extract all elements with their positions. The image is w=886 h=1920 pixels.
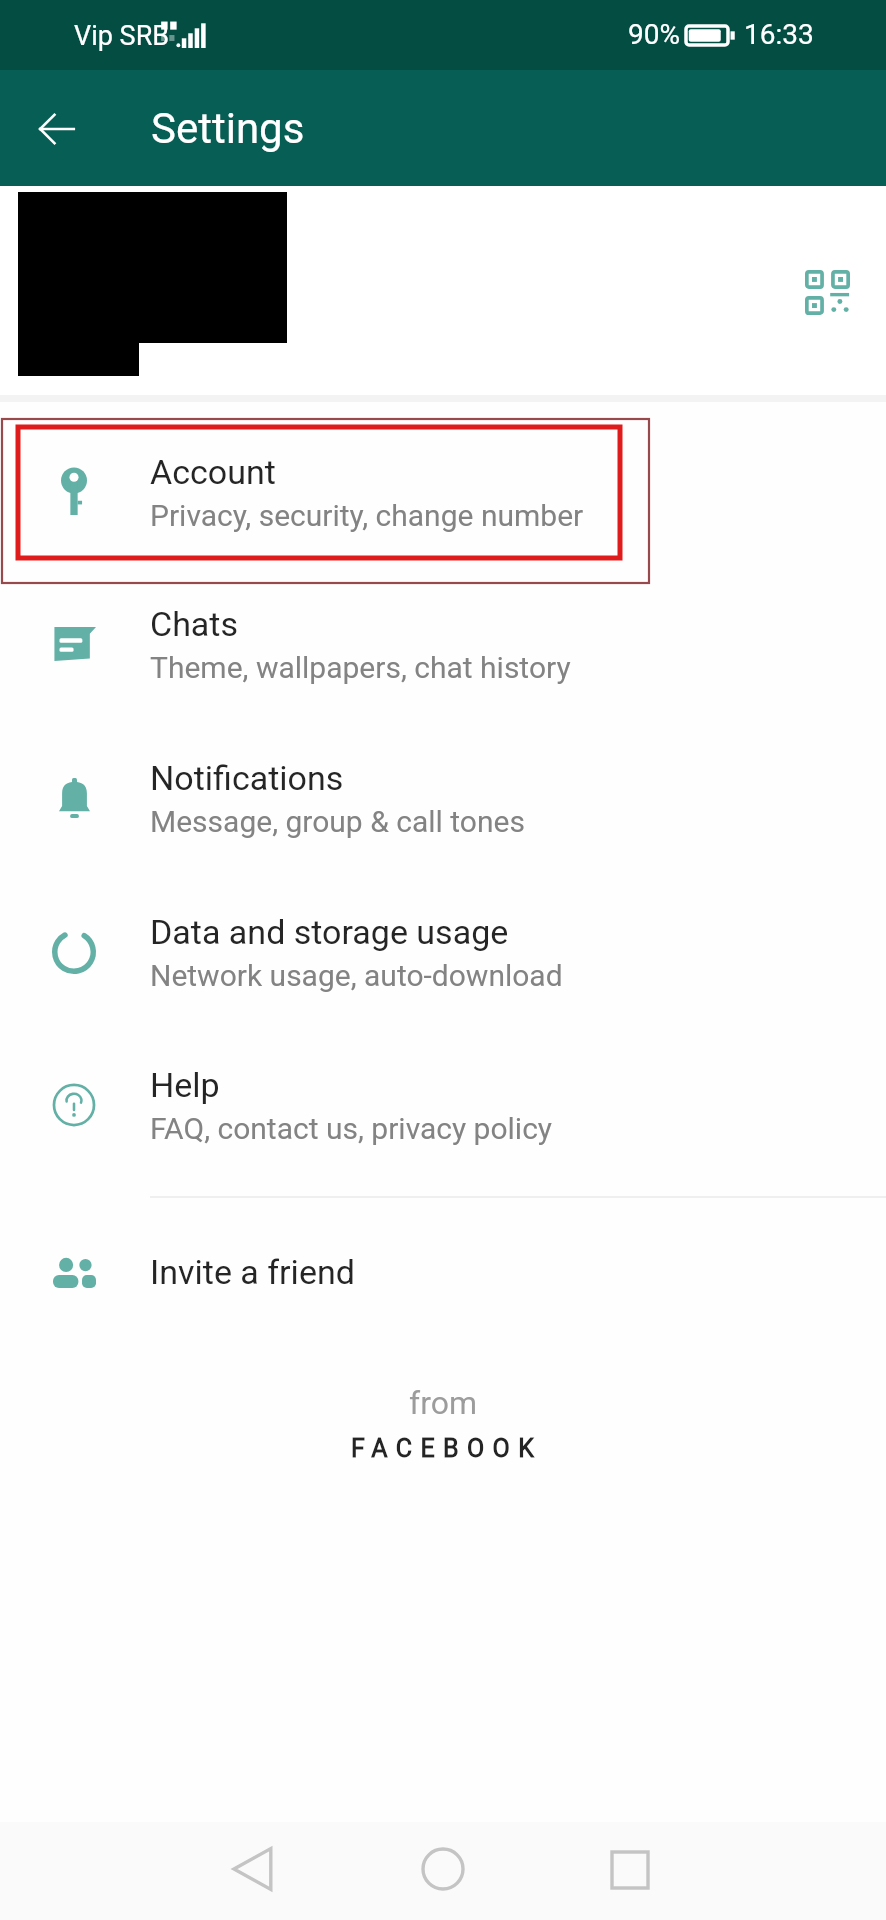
staticText: Notifications — [150, 758, 344, 798]
button[interactable]: Help — [0, 1027, 886, 1181]
staticText: Message, group & call tones — [150, 804, 525, 839]
staticText: Settings — [151, 104, 305, 153]
button[interactable]: Profile — [0, 186, 886, 395]
staticText: Chats — [150, 604, 239, 644]
staticText: Data and storage usage — [150, 912, 509, 952]
button[interactable]: Account — [0, 414, 886, 568]
staticText: from — [409, 1384, 477, 1422]
button[interactable]: Back — [212, 1829, 292, 1909]
staticText: Privacy, security, change number — [150, 498, 584, 533]
staticText: Account — [150, 452, 276, 492]
staticText: Invite a friend — [150, 1252, 355, 1292]
button[interactable]: Back — [36, 108, 78, 150]
staticText: Theme, wallpapers, chat history — [150, 650, 571, 685]
button[interactable]: Invite a friend — [0, 1204, 886, 1344]
staticText: Vip SRB — [74, 20, 170, 52]
button[interactable]: Notifications — [0, 720, 886, 874]
button[interactable]: Chats — [0, 566, 886, 720]
staticText: FAQ, contact us, privacy policy — [150, 1111, 553, 1146]
staticText: 16:33 — [744, 18, 814, 51]
staticText: FACEBOOK — [351, 1434, 543, 1463]
button[interactable]: Show QR code — [805, 270, 850, 315]
staticText: Network usage, auto-download — [150, 958, 563, 993]
button[interactable]: Data and storage usage — [0, 874, 886, 1028]
staticText: 90% — [628, 18, 680, 51]
button[interactable]: Home — [403, 1829, 483, 1909]
button[interactable]: Recent apps — [590, 1830, 670, 1910]
staticText: Help — [150, 1065, 220, 1105]
